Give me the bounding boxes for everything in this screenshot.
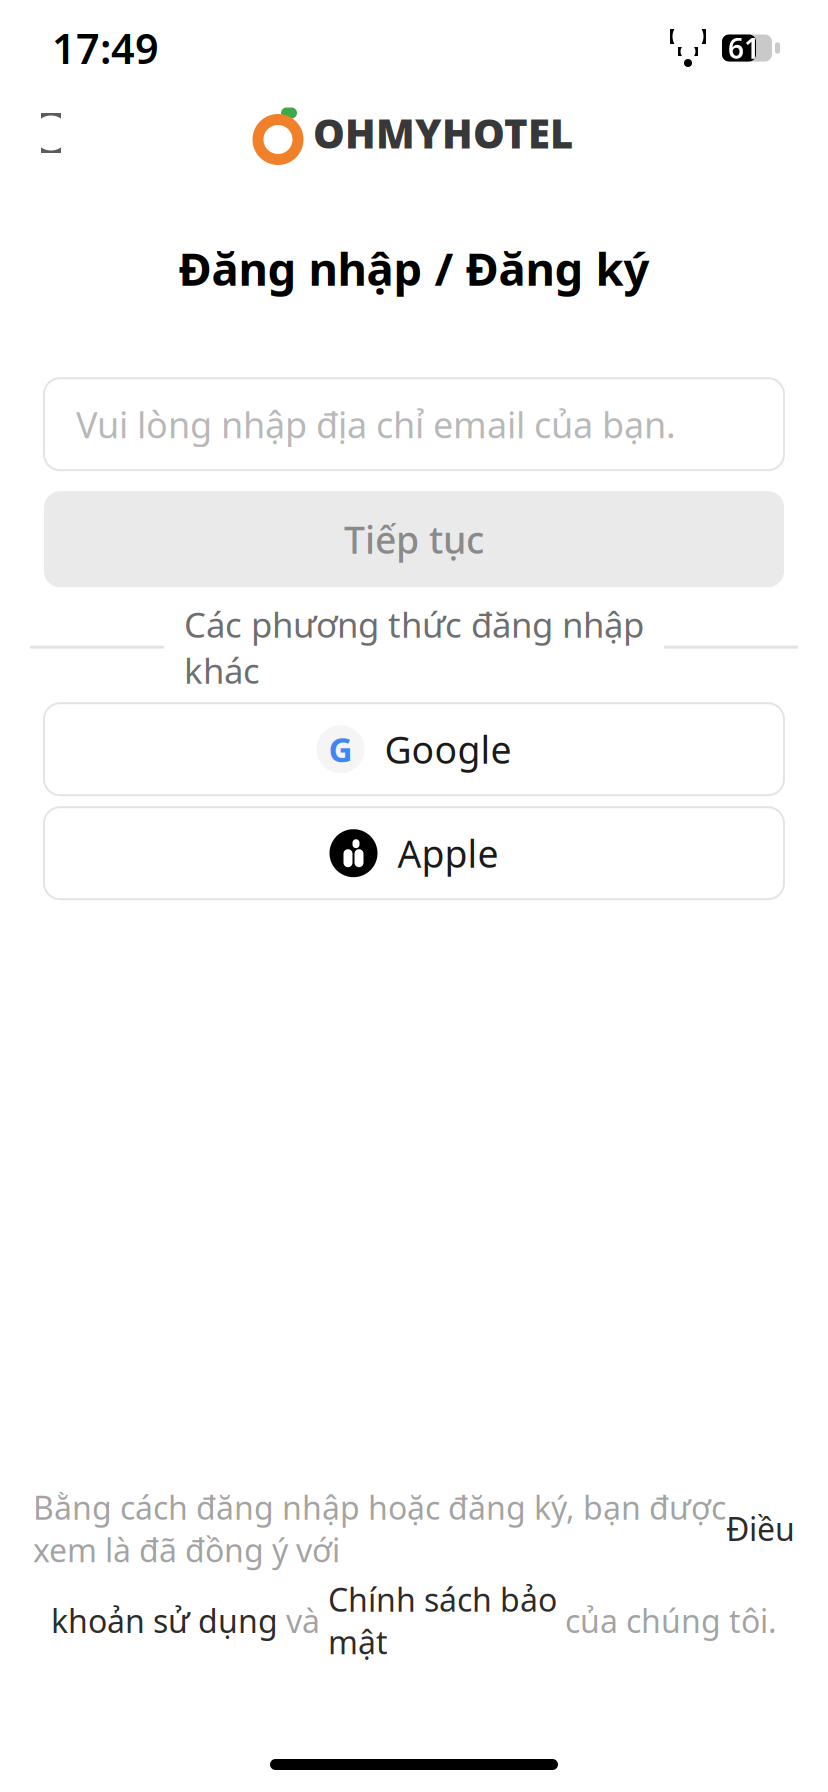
button[interactable]: Vui lòng nhập địa chỉ email của bạn. <box>44 378 784 470</box>
button[interactable]: Apple <box>44 807 784 899</box>
staticText: Chính sách bảo mật <box>328 1578 557 1663</box>
staticText: của chúng tôi. <box>557 1599 777 1642</box>
staticText: Điều <box>726 1507 795 1550</box>
button[interactable]: Back <box>16 98 86 168</box>
staticText: OHMYHOTEL <box>313 106 573 159</box>
staticText: Đăng nhập / Đăng ký <box>178 238 649 298</box>
staticText: Tiếp tục <box>344 514 484 564</box>
staticText: Google <box>384 724 511 774</box>
staticText: 61 <box>728 29 760 67</box>
staticText: 17:49 <box>52 21 159 75</box>
staticText: Apple <box>397 828 498 878</box>
staticText: Bằng cách đăng nhập hoặc đăng ký, bạn đư… <box>33 1486 726 1571</box>
staticText: Các phương thức đăng nhập khác <box>184 601 644 693</box>
button[interactable]: G <box>44 703 784 795</box>
button[interactable]: Tiếp tục <box>44 491 784 587</box>
staticText: khoản sử dụng <box>51 1599 278 1642</box>
staticText: G <box>328 727 352 771</box>
staticText: và <box>278 1599 328 1642</box>
staticText: Vui lòng nhập địa chỉ email của bạn. <box>76 400 676 448</box>
